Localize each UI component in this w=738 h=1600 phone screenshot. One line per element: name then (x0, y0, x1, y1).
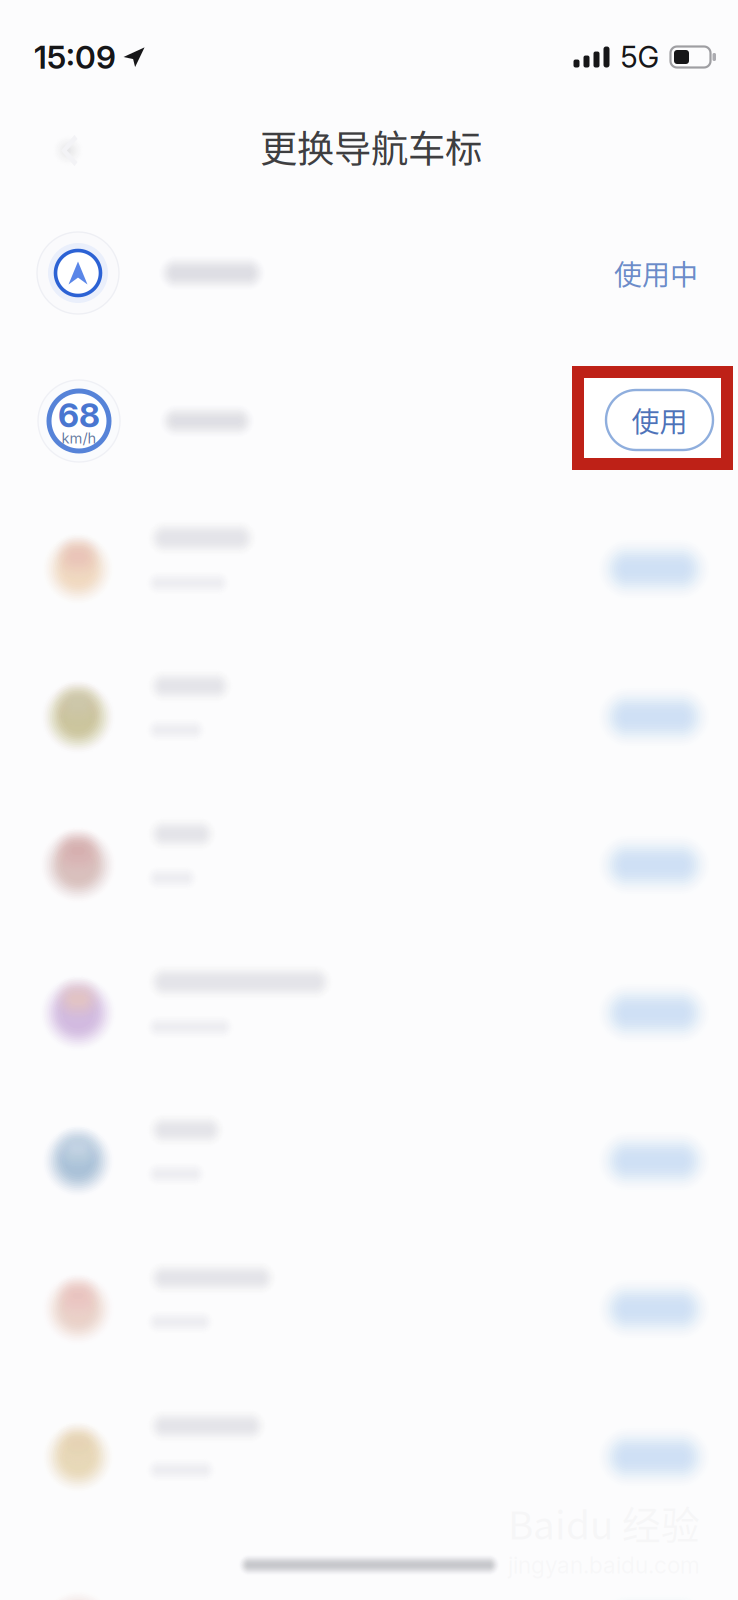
staticText: 使用中 (614, 253, 698, 293)
button[interactable]: 使用 (572, 366, 733, 470)
button[interactable] (0, 1235, 738, 1383)
staticText: 5G (620, 39, 659, 75)
staticText: 使用 (631, 400, 687, 440)
button[interactable] (0, 1383, 738, 1531)
staticText: 15:09 (34, 38, 116, 76)
button[interactable] (0, 939, 738, 1087)
staticText: 更换导航车标 (260, 119, 482, 174)
button[interactable] (0, 495, 738, 643)
button[interactable] (0, 1087, 738, 1235)
button[interactable]: 使用中 (0, 199, 738, 347)
staticText: km/h (61, 429, 96, 447)
staticText: 68 (58, 395, 100, 435)
button[interactable] (0, 791, 738, 939)
button[interactable] (0, 643, 738, 791)
